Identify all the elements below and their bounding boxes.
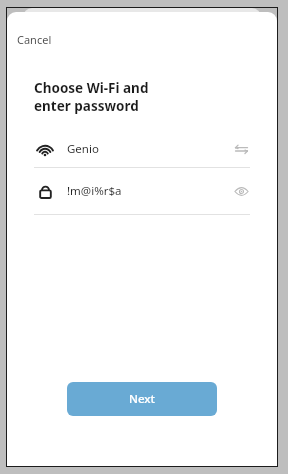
button[interactable]: Password	[34, 168, 250, 214]
staticText: Cancel	[17, 32, 52, 47]
other: Wi-Fi network	[34, 138, 56, 160]
button[interactable]: Wi-Fi network	[34, 131, 250, 167]
button[interactable]: Change network	[232, 140, 250, 158]
other: Password	[34, 180, 56, 202]
staticText: Genio	[67, 141, 99, 157]
button[interactable]: Show password	[232, 182, 250, 200]
staticText: Choose Wi-Fi and enter password	[34, 79, 149, 115]
staticText: Next	[129, 391, 155, 407]
staticText: !m@i%r$a	[67, 183, 122, 199]
button[interactable]: Cancel	[7, 30, 66, 53]
button[interactable]: Next	[67, 382, 217, 416]
